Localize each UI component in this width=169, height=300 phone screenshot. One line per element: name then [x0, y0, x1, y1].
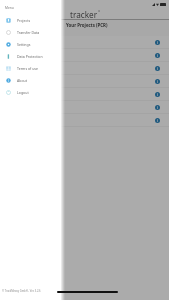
button[interactable]: Transfer Data	[0, 26, 61, 38]
button[interactable]: Info	[0, 88, 169, 101]
staticText: Your Projects (PCR)	[66, 22, 108, 28]
staticText: © TrackMeasy GmbH - Ver. 3.2.6	[2, 289, 41, 293]
other: Info	[155, 92, 160, 97]
staticText: Logout	[17, 90, 29, 95]
other: Info	[155, 118, 160, 123]
button[interactable]: Data Protection	[0, 50, 61, 62]
other: Info	[155, 40, 160, 45]
button[interactable]: Settings	[0, 38, 61, 50]
staticText: Terms of use	[17, 66, 39, 71]
button[interactable]: Info	[0, 101, 169, 114]
other: Info	[155, 66, 160, 71]
other: Info	[155, 105, 160, 110]
button[interactable]: Info	[0, 114, 169, 127]
staticText: °	[98, 9, 101, 16]
staticText: About	[17, 78, 27, 83]
other: Info	[155, 79, 160, 84]
button[interactable]: Info	[0, 49, 169, 62]
button[interactable]: Projects	[0, 14, 61, 26]
staticText: Menu	[5, 6, 14, 10]
staticText: Projects	[17, 18, 31, 23]
button[interactable]: Terms of use	[0, 62, 61, 74]
staticText: tracker	[70, 9, 98, 19]
staticText: Settings	[17, 42, 31, 47]
staticText: Transfer Data	[17, 30, 40, 35]
button[interactable]: Logout	[0, 86, 61, 98]
button[interactable]: Info	[0, 75, 169, 88]
button[interactable]: Info	[0, 36, 169, 49]
button[interactable]: About	[0, 74, 61, 86]
button[interactable]: Info	[0, 62, 169, 75]
other: Info	[155, 53, 160, 58]
staticText: Data Protection	[17, 54, 43, 59]
